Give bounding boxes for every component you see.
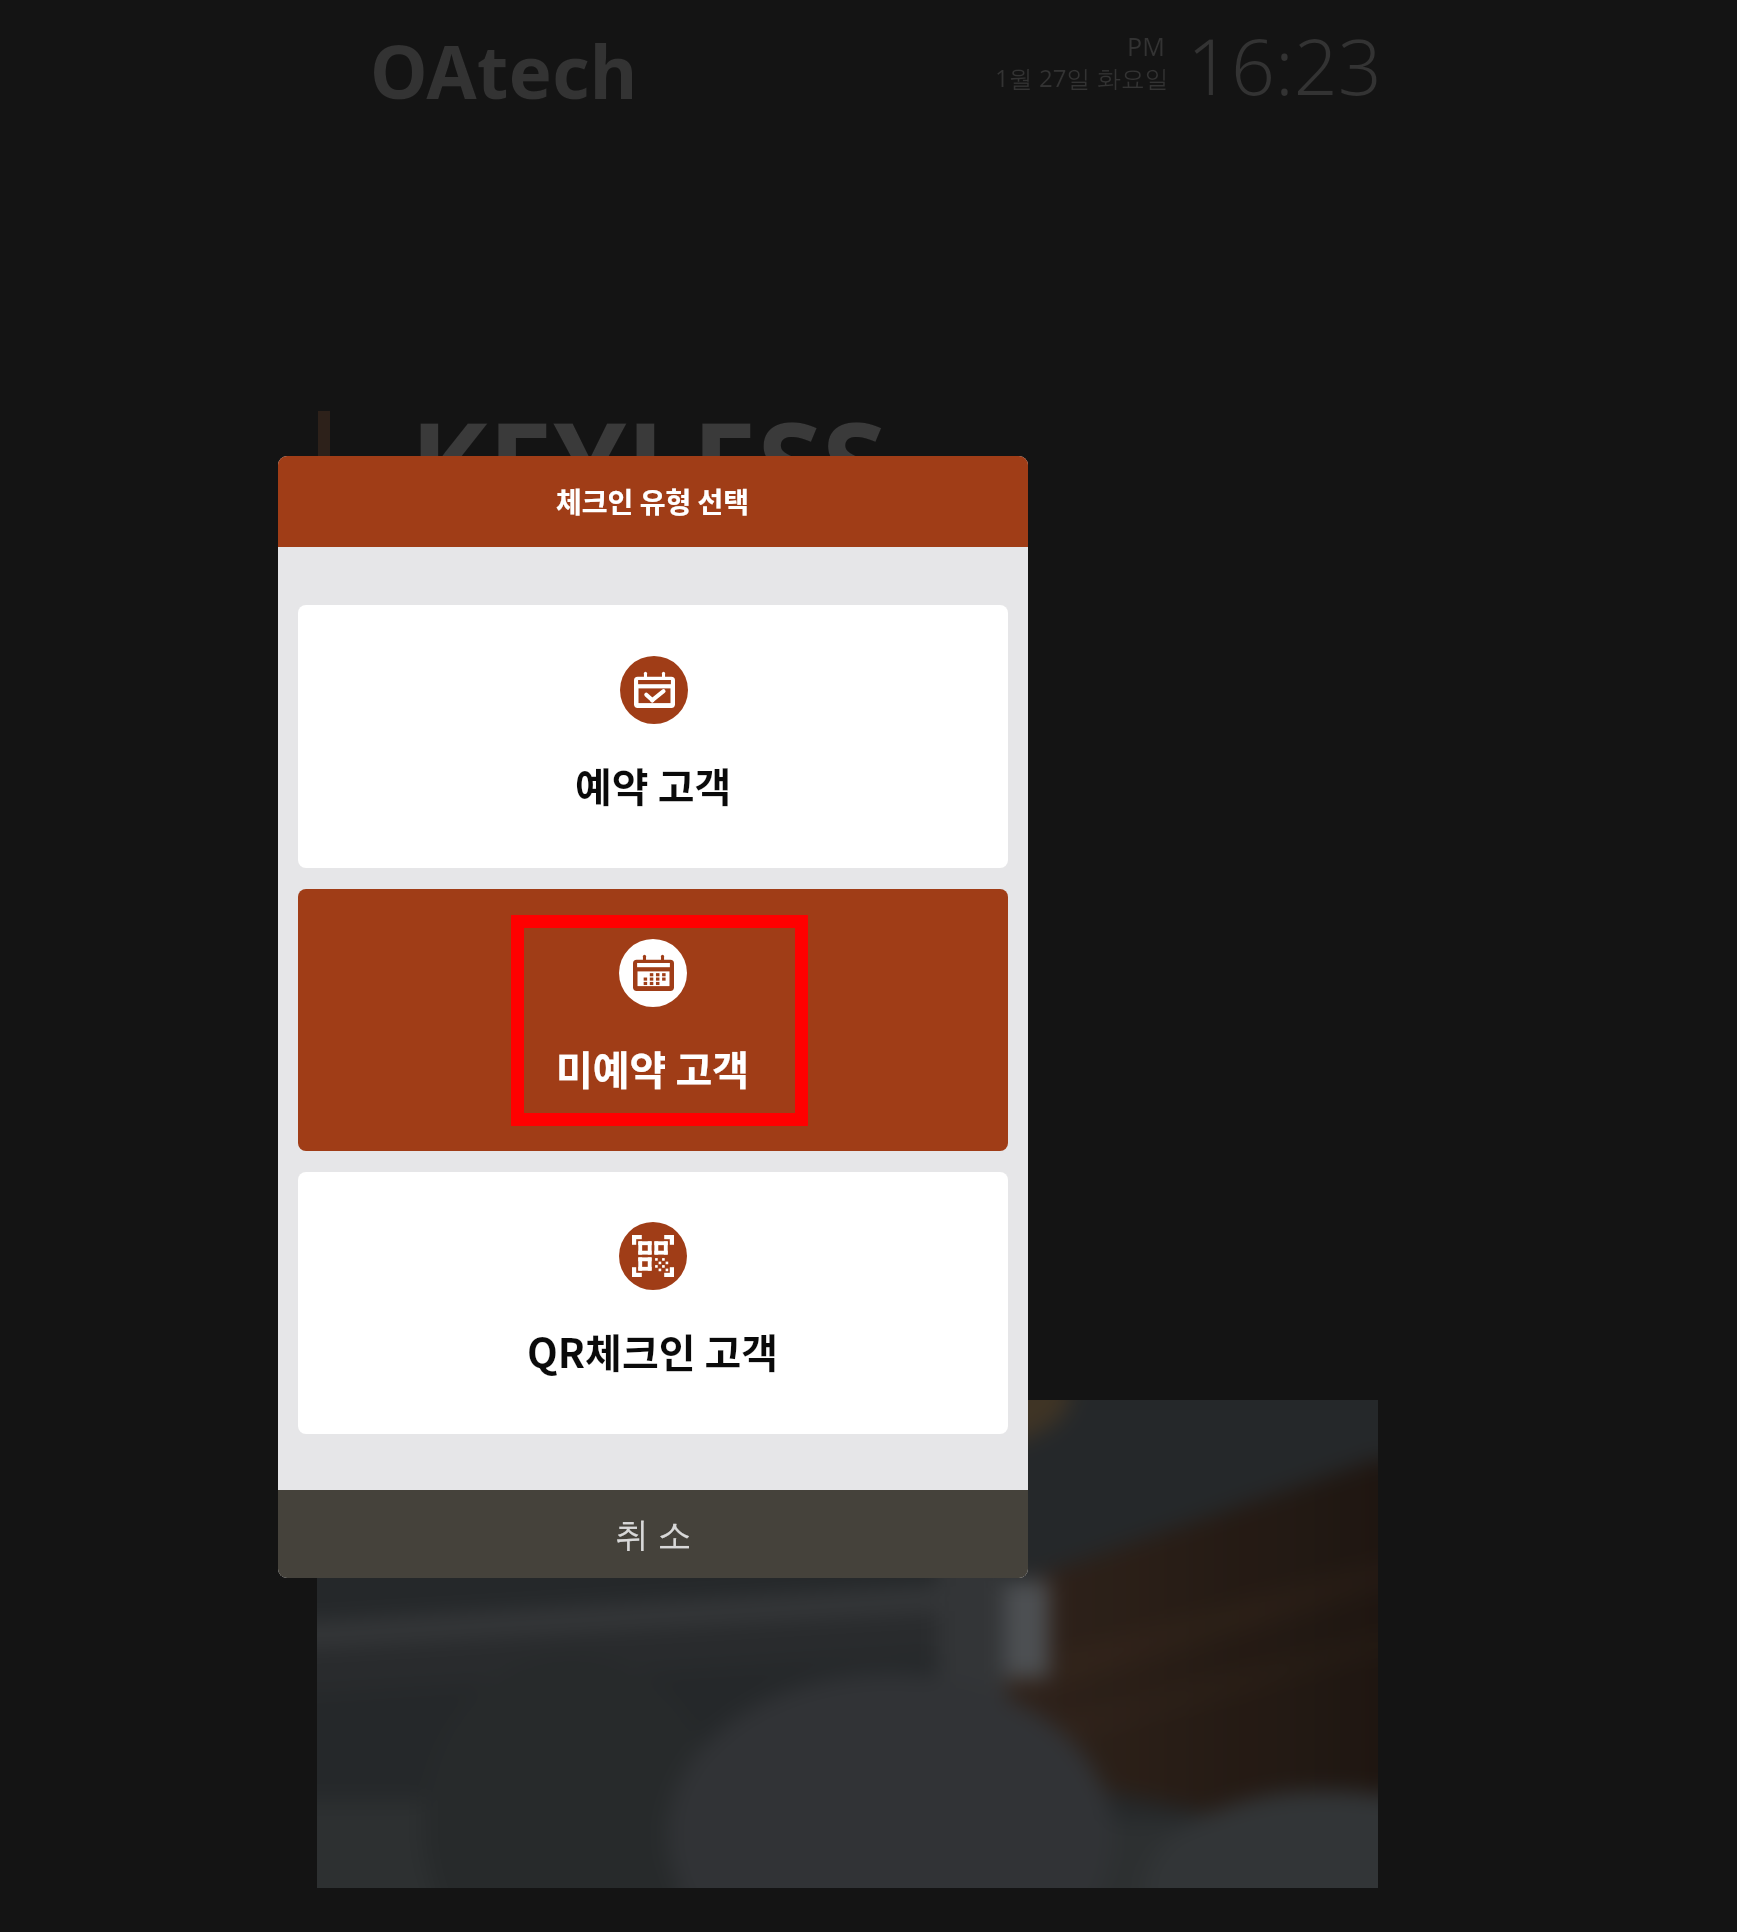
staticText: QR체크인 고객 [527, 1322, 779, 1380]
staticText: 1월 27일 화요일 [995, 61, 1169, 94]
staticText: PM [1127, 29, 1165, 63]
button[interactable]: 미예약 고객 [298, 889, 1008, 1151]
staticText: KEYLESS [410, 382, 887, 541]
staticText: 예약 고객 [575, 756, 732, 814]
button[interactable]: 예약 고객 [298, 605, 1008, 868]
staticText: 체크인 유형 선택 [556, 481, 750, 522]
button[interactable]: QR체크인 고객 [298, 1172, 1008, 1434]
staticText: 미예약 고객 [556, 1039, 750, 1097]
staticText: 16:23 [1187, 13, 1382, 118]
staticText: OAtech [370, 21, 638, 120]
button[interactable]: 취소 [278, 1490, 1028, 1578]
staticText: 취 소 [615, 1511, 692, 1557]
